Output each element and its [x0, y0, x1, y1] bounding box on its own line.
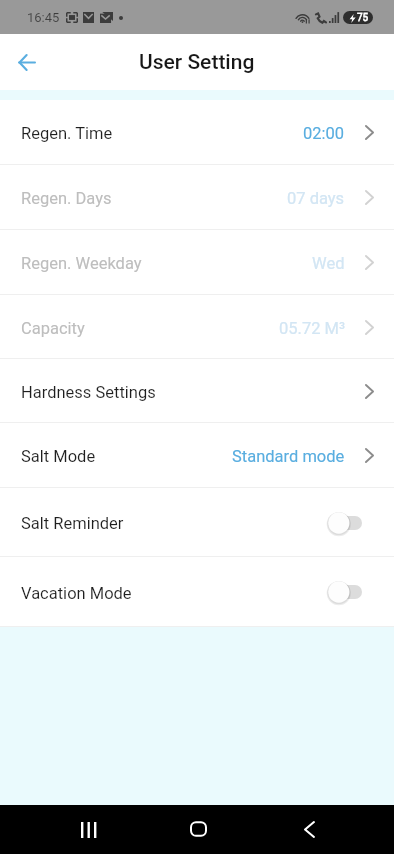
staticText: Capacity [21, 319, 85, 338]
staticText: Hardness Settings [21, 383, 156, 402]
staticText: 05.72 M³ [279, 319, 345, 338]
staticText: Standard mode [232, 447, 345, 466]
staticText: Salt Reminder [21, 514, 124, 533]
staticText: 75 [357, 12, 369, 24]
button[interactable]: Capacity [0, 295, 394, 359]
staticText: 02:00 [303, 124, 345, 143]
staticText: User Setting [139, 50, 255, 75]
staticText: 07 days [287, 189, 345, 208]
staticText: Wed [312, 254, 345, 273]
staticText: Vacation Mode [21, 584, 132, 603]
button[interactable]: Back [5, 40, 49, 84]
staticText: 16:45 [27, 10, 60, 25]
button[interactable]: Regen. Time [0, 100, 394, 165]
button[interactable]: Recent apps [60, 805, 117, 854]
button[interactable]: Hardness Settings [0, 359, 394, 423]
button[interactable]: Salt Reminder [0, 488, 394, 557]
staticText: Salt Mode [21, 447, 96, 466]
button[interactable]: Regen. Weekday [0, 230, 394, 295]
staticText: Regen. Days [21, 189, 112, 208]
staticText: Regen. Time [21, 124, 113, 143]
button[interactable]: Regen. Days [0, 165, 394, 230]
staticText: Regen. Weekday [21, 254, 142, 273]
button[interactable]: Home [170, 805, 227, 854]
button[interactable]: Salt Mode [0, 423, 394, 488]
button[interactable]: Vacation Mode [0, 557, 394, 627]
button[interactable]: Back [281, 805, 338, 854]
